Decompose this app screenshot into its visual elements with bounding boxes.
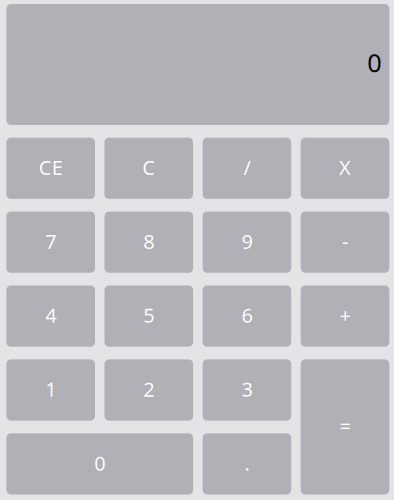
staticText: 0 — [367, 46, 381, 79]
button[interactable]: Clear — [104, 138, 193, 199]
staticText: 9 — [241, 228, 252, 254]
staticText: 4 — [45, 302, 56, 328]
button[interactable]: Minus — [301, 212, 389, 273]
button[interactable]: Decimal point — [203, 433, 291, 494]
staticText: 5 — [143, 302, 154, 328]
staticText: X — [339, 154, 351, 181]
staticText: 7 — [45, 228, 56, 254]
button[interactable]: 3 — [203, 359, 291, 421]
staticText: = — [339, 413, 350, 439]
button[interactable]: Clear entry — [6, 138, 95, 199]
staticText: 0 — [94, 450, 105, 476]
button[interactable]: 9 — [203, 212, 291, 273]
button[interactable]: 6 — [203, 285, 291, 347]
button[interactable]: 8 — [104, 212, 193, 273]
button[interactable]: 1 — [6, 359, 95, 421]
button[interactable]: Multiply — [301, 138, 389, 199]
staticText: 3 — [241, 376, 252, 402]
button[interactable]: Plus — [301, 285, 389, 347]
staticText: - — [342, 228, 348, 254]
staticText: CE — [39, 154, 63, 181]
staticText: . — [244, 450, 249, 476]
button[interactable]: 2 — [104, 359, 193, 421]
button[interactable]: Divide — [203, 138, 291, 199]
staticText: 1 — [45, 376, 56, 402]
button[interactable]: 5 — [104, 285, 193, 347]
button[interactable]: 4 — [6, 285, 95, 347]
button[interactable]: 0 — [6, 433, 193, 494]
staticText: / — [243, 154, 250, 181]
staticText: + — [339, 302, 350, 328]
staticText: 6 — [241, 302, 252, 328]
staticText: C — [142, 154, 155, 181]
staticText: 2 — [143, 376, 154, 402]
staticText: 8 — [143, 228, 154, 254]
button[interactable]: Equals — [301, 359, 389, 494]
button[interactable]: 7 — [6, 212, 95, 273]
